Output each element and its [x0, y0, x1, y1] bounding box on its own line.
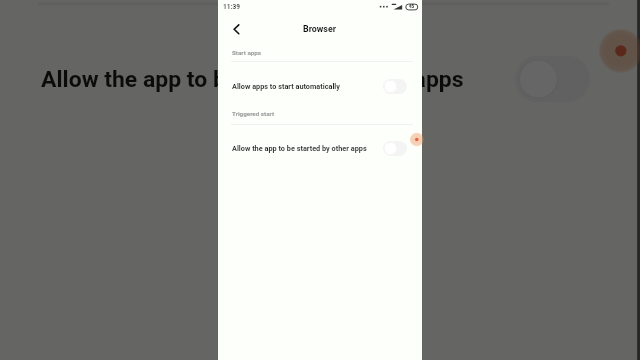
button[interactable]: Toggle switch, off — [383, 141, 407, 156]
staticText: Allow apps to start automatically — [232, 82, 340, 91]
button[interactable]: Navigate up — [222, 16, 248, 44]
button[interactable]: Allow the app to be started by other app… — [218, 136, 422, 162]
staticText: Start apps — [232, 49, 262, 56]
staticText: 45 — [409, 3, 415, 9]
staticText: Browser — [303, 24, 336, 34]
button[interactable]: Toggle switch, off — [383, 79, 407, 94]
button[interactable]: Allow the app to be started by other app… — [0, 40, 637, 121]
staticText: Allow the app to be started by other app… — [41, 65, 465, 93]
staticText: Triggered start — [232, 110, 275, 117]
button[interactable]: Allow apps to start automatically — [218, 74, 422, 100]
staticText: Allow the app to be started by other app… — [232, 144, 367, 153]
staticText: 11:39 — [223, 2, 241, 11]
